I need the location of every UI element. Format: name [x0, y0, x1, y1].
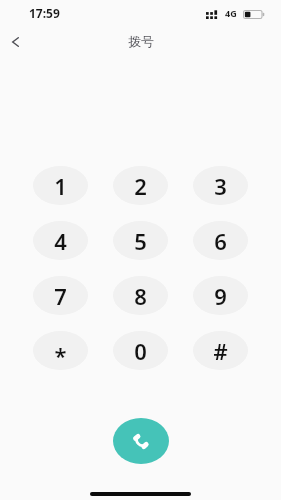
staticText: #	[213, 336, 228, 366]
staticText: 4	[54, 226, 67, 256]
staticText: 17:59	[29, 5, 60, 21]
staticText: 2	[134, 171, 147, 201]
staticText: 3	[214, 171, 227, 201]
staticText: 1	[54, 171, 67, 201]
staticText: *	[54, 340, 67, 370]
button[interactable]: 5	[113, 221, 168, 260]
staticText: 5	[134, 226, 147, 256]
button[interactable]: 7	[33, 276, 88, 315]
button[interactable]: *	[33, 331, 88, 370]
staticText: 0	[134, 336, 147, 366]
button[interactable]: 0	[113, 331, 168, 370]
button[interactable]: Back	[0, 27, 30, 57]
staticText: 8	[134, 281, 147, 311]
button[interactable]: 2	[113, 166, 168, 205]
button[interactable]: 3	[193, 166, 248, 205]
button[interactable]: 6	[193, 221, 248, 260]
button[interactable]: 8	[113, 276, 168, 315]
staticText: 4G	[225, 7, 237, 19]
staticText: 6	[214, 226, 227, 256]
staticText: 7	[54, 281, 67, 311]
staticText: 9	[214, 281, 227, 311]
button[interactable]: 4	[33, 221, 88, 260]
staticText: 拨号	[128, 33, 154, 49]
button[interactable]: 1	[33, 166, 88, 205]
button[interactable]: Call	[113, 418, 169, 464]
button[interactable]: 9	[193, 276, 248, 315]
button[interactable]: #	[193, 331, 248, 370]
